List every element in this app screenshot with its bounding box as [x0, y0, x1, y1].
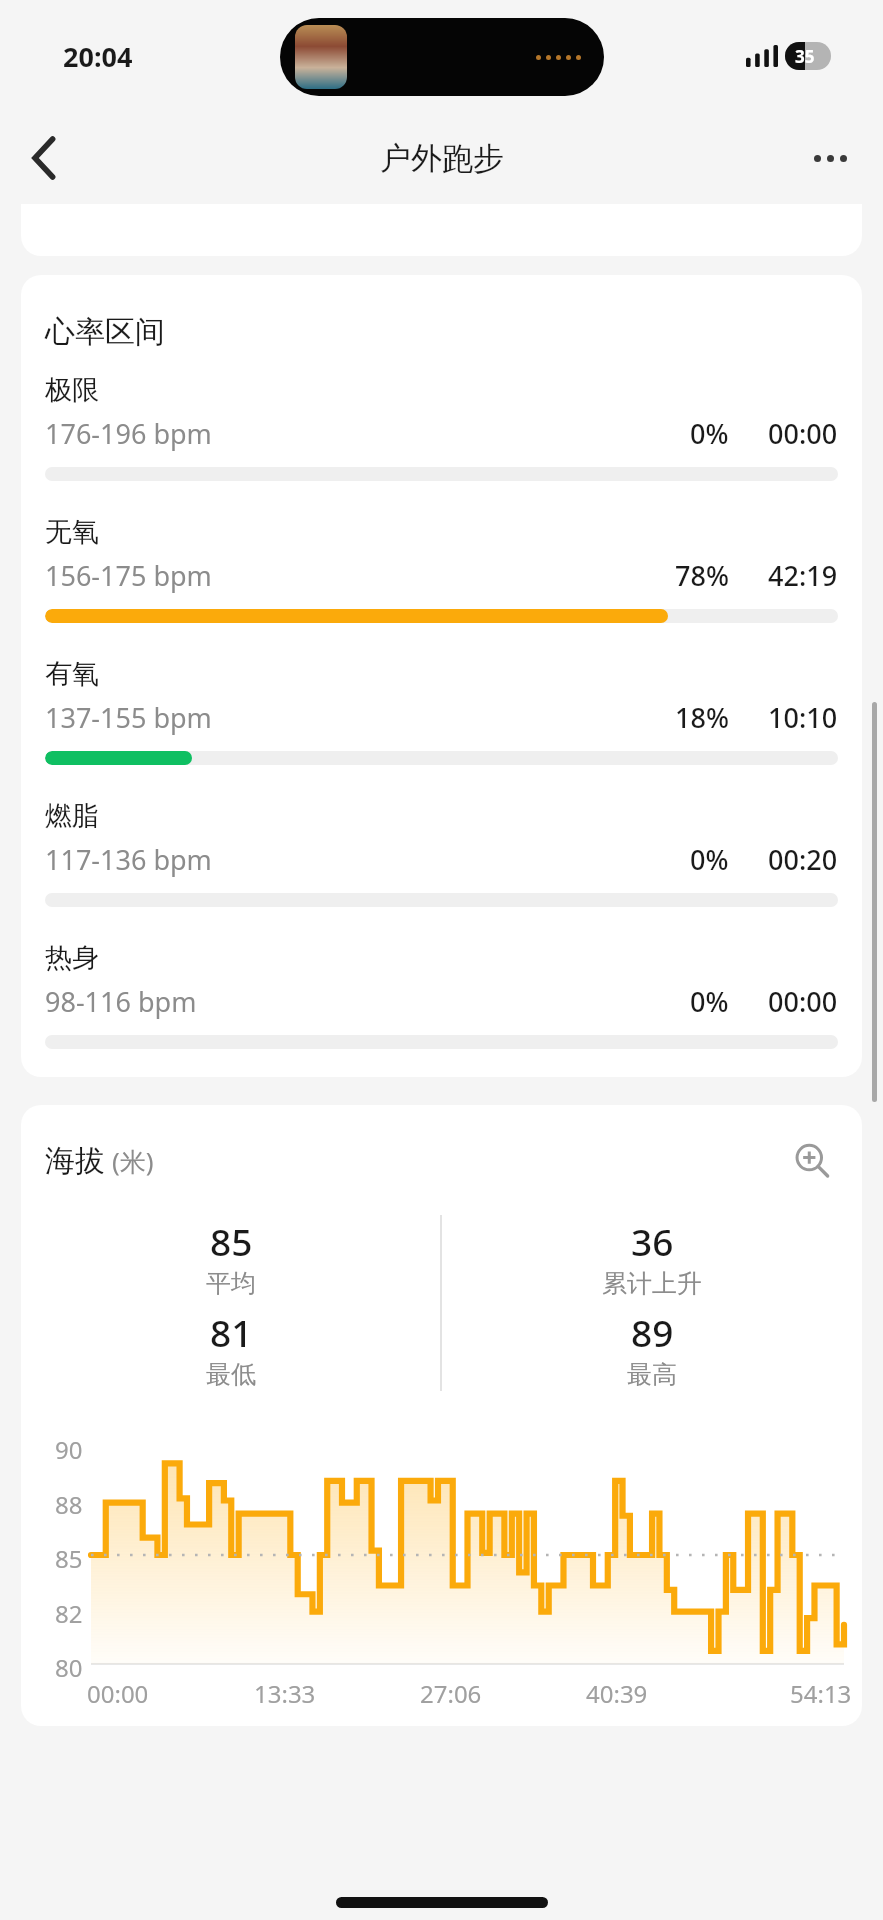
staticText: 0% — [690, 841, 729, 878]
staticText: 98-116 bpm — [45, 983, 197, 1020]
staticText: 82 — [55, 1597, 83, 1623]
staticText: 18% — [675, 699, 729, 736]
staticText: 40:39 — [586, 1677, 648, 1710]
staticText: 89 — [631, 1307, 674, 1357]
button[interactable]: More options — [801, 129, 859, 187]
staticText: 00:00 — [87, 1677, 149, 1710]
staticText: 海拔 — [45, 1142, 105, 1180]
staticText: 42:19 — [768, 557, 838, 594]
staticText: 00:20 — [768, 841, 838, 878]
button[interactable]: Expand chart — [786, 1135, 838, 1187]
staticText: 20:04 — [63, 38, 133, 75]
staticText: 36 — [631, 1216, 674, 1266]
staticText: 极限 — [45, 373, 99, 407]
staticText: 最低 — [206, 1359, 256, 1390]
staticText: 35 — [795, 45, 815, 68]
staticText: 90 — [55, 1433, 83, 1459]
staticText: 心率区间 — [45, 313, 165, 351]
staticText: 平均 — [206, 1268, 256, 1299]
staticText: 137-155 bpm — [45, 699, 212, 736]
staticText: 无氧 — [45, 515, 99, 549]
staticText: 88 — [55, 1488, 83, 1514]
button[interactable]: Back — [16, 129, 74, 187]
staticText: 80 — [55, 1651, 83, 1677]
staticText: 0% — [690, 983, 729, 1020]
staticText: 燃脂 — [45, 799, 99, 833]
staticText: 户外跑步 — [380, 139, 504, 178]
staticText: (米) — [112, 1143, 154, 1179]
staticText: 81 — [210, 1307, 253, 1357]
staticText: 156-175 bpm — [45, 557, 212, 594]
staticText: 0% — [690, 415, 729, 452]
staticText: 00:00 — [768, 415, 838, 452]
staticText: 累计上升 — [602, 1268, 702, 1299]
staticText: 13:33 — [254, 1677, 316, 1710]
staticText: 78% — [675, 557, 729, 594]
staticText: 热身 — [45, 941, 99, 975]
staticText: 117-136 bpm — [45, 841, 212, 878]
staticText: 最高 — [627, 1359, 677, 1390]
staticText: 有氧 — [45, 657, 99, 691]
staticText: 85 — [210, 1216, 253, 1266]
staticText: 27:06 — [420, 1677, 482, 1710]
staticText: 85 — [55, 1542, 83, 1568]
staticText: 10:10 — [768, 699, 838, 736]
staticText: 00:00 — [768, 983, 838, 1020]
staticText: 176-196 bpm — [45, 415, 212, 452]
staticText: 54:13 — [790, 1677, 852, 1710]
